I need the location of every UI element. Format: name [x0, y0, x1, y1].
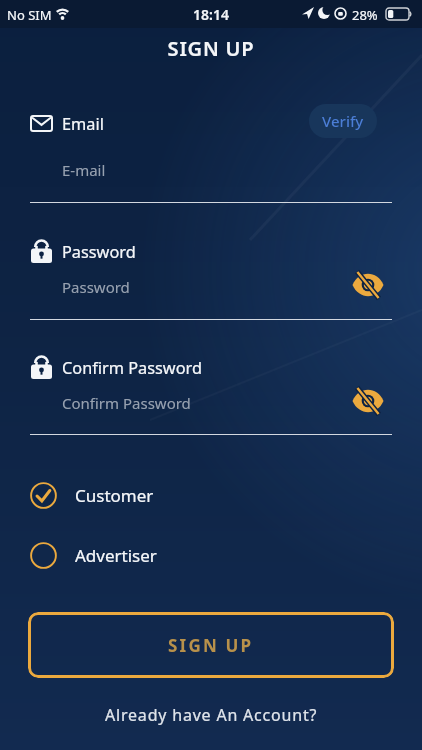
button[interactable]: Customer: [30, 482, 230, 509]
staticText: Confirm Password: [62, 357, 202, 379]
staticText: Already have An Account?: [105, 704, 318, 726]
staticText: SIGN UP: [168, 634, 254, 657]
staticText: Password: [62, 241, 136, 263]
button[interactable]: SIGN UP: [28, 612, 394, 678]
staticText: SIGN UP: [0, 35, 422, 62]
button[interactable]: Already have An Account?: [0, 703, 422, 727]
staticText: Password: [62, 277, 130, 297]
staticText: Customer: [75, 484, 154, 507]
staticText: Email: [62, 113, 104, 135]
staticText: Advertiser: [75, 544, 157, 567]
staticText: Verify: [322, 111, 364, 131]
staticText: 18:14: [0, 5, 422, 24]
staticText: No SIM: [7, 6, 52, 24]
staticText: E-mail: [62, 160, 106, 180]
button[interactable]: Advertiser: [30, 542, 230, 569]
button[interactable]: [348, 384, 388, 418]
staticText: Confirm Password: [62, 393, 191, 413]
staticText: 28%: [352, 6, 378, 24]
button[interactable]: [348, 268, 388, 302]
button[interactable]: Verify: [309, 104, 377, 138]
